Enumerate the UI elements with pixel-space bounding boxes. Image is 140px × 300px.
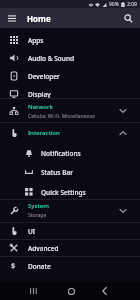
- button[interactable]: System: [0, 199, 140, 222]
- button[interactable]: Developer: [0, 67, 140, 85]
- staticText: Status Bar: [41, 168, 73, 177]
- button[interactable]: [26, 284, 40, 298]
- staticText: Network: [28, 103, 53, 111]
- staticText: Audio & Sound: [28, 54, 74, 63]
- staticText: Storage: [28, 212, 47, 219]
- button[interactable]: Interaction: [0, 123, 140, 142]
- button[interactable]: [122, 12, 134, 24]
- button[interactable]: Audio & Sound: [0, 49, 140, 67]
- button[interactable]: [97, 284, 111, 298]
- staticText: UI: [28, 227, 36, 236]
- staticText: Interaction: [28, 129, 60, 137]
- button[interactable]: UI: [0, 223, 140, 239]
- button[interactable]: [5, 12, 18, 25]
- button[interactable]: Donate: [0, 257, 140, 275]
- staticText: Advanced: [28, 244, 59, 253]
- button[interactable]: Advanced: [0, 240, 140, 256]
- staticText: Donate: [28, 262, 51, 271]
- button[interactable]: Notifications: [0, 144, 140, 162]
- staticText: Quick Settings: [41, 188, 86, 197]
- button[interactable]: Network: [0, 100, 140, 122]
- button[interactable]: Apps: [0, 31, 140, 49]
- staticText: $: [11, 261, 16, 271]
- button[interactable]: Display: [0, 85, 140, 103]
- staticText: Apps: [28, 36, 44, 45]
- staticText: Notifications: [41, 149, 81, 158]
- staticText: Home: [27, 13, 51, 24]
- staticText: Developer: [28, 72, 60, 81]
- staticText: Cellular, Wi-Fi, Miscellaneous: [28, 113, 95, 120]
- button[interactable]: [64, 284, 78, 298]
- staticText: 2:09: [127, 1, 137, 8]
- button[interactable]: Status Bar: [0, 163, 140, 181]
- staticText: Display: [28, 90, 51, 99]
- staticText: 90%: [109, 1, 119, 8]
- staticText: System: [28, 202, 49, 210]
- button[interactable]: Quick Settings: [0, 184, 140, 200]
